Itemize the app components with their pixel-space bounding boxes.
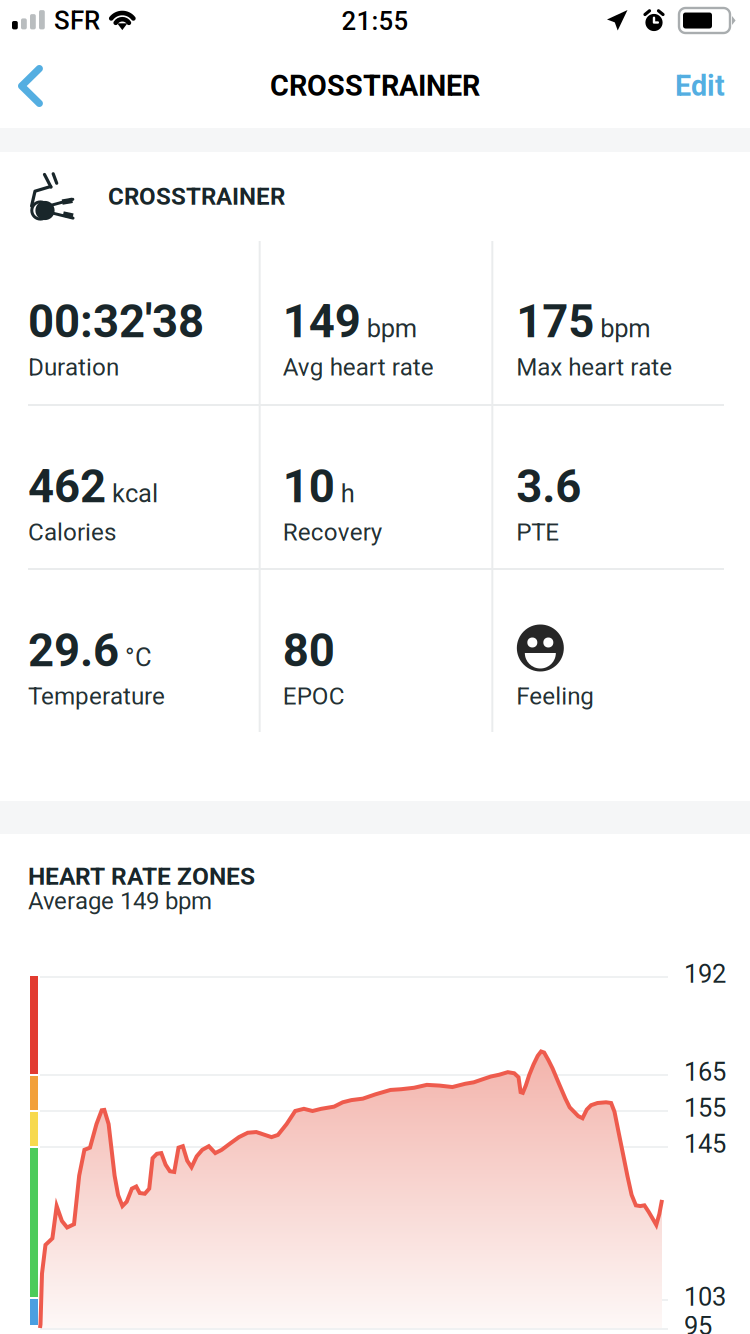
staticText: 155 — [684, 1093, 726, 1123]
staticText: EPOC — [283, 682, 345, 710]
staticText: 192 — [684, 959, 726, 989]
staticText: bpm — [600, 314, 650, 343]
staticText: Temperature — [28, 682, 165, 710]
staticText: Duration — [28, 353, 119, 381]
staticText: 145 — [684, 1129, 726, 1159]
staticText: h — [341, 479, 355, 508]
staticText: HEART RATE ZONES — [28, 862, 255, 891]
staticText: bpm — [367, 314, 417, 343]
staticText: 10 — [283, 460, 335, 513]
staticText: 165 — [684, 1057, 726, 1087]
staticText: Average 149 bpm — [28, 887, 212, 915]
staticText: 462 — [28, 460, 106, 513]
staticText: Feeling — [516, 682, 594, 710]
staticText: 00:32'38 — [28, 295, 204, 348]
staticText: Calories — [28, 518, 116, 546]
button[interactable]: Back — [0, 44, 69, 128]
button[interactable]: Edit — [650, 44, 750, 128]
staticText: Recovery — [283, 518, 382, 546]
staticText: 29.6 — [28, 624, 119, 677]
staticText: kcal — [112, 479, 158, 508]
staticText: 149 — [283, 295, 361, 348]
staticText: 3.6 — [516, 460, 581, 513]
staticText: CROSSTRAINER — [270, 69, 480, 103]
staticText: PTE — [516, 518, 559, 546]
staticText: 95 — [684, 1311, 712, 1334]
staticText: CROSSTRAINER — [108, 182, 285, 211]
staticText: Avg heart rate — [283, 353, 434, 381]
staticText: Max heart rate — [516, 353, 672, 381]
staticText: 21:55 — [341, 6, 408, 36]
staticText: 103 — [684, 1282, 726, 1312]
staticText: °C — [125, 643, 152, 672]
staticText: SFR — [54, 5, 100, 36]
staticText: 175 — [516, 295, 594, 348]
staticText: Edit — [675, 69, 725, 103]
staticText: 80 — [283, 624, 335, 677]
